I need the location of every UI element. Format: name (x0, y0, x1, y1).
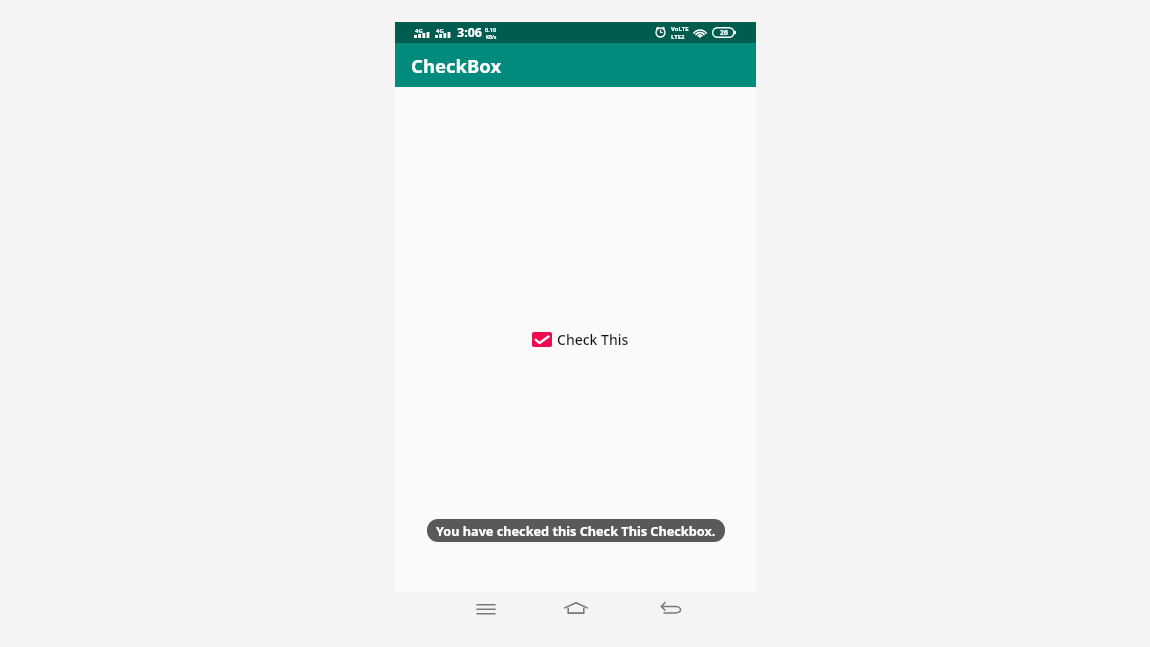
button[interactable]: Back (637, 592, 697, 632)
button[interactable]: Recent apps (457, 592, 517, 632)
staticText: 26 (720, 28, 729, 38)
button[interactable]: Check This (530, 328, 631, 351)
staticText: CheckBox (411, 53, 502, 78)
staticText: LTE2 (671, 33, 685, 41)
staticText: 3:06 (457, 24, 482, 41)
staticText: 4G (415, 27, 423, 35)
staticText: Check This (557, 330, 629, 349)
staticText: 0.10 (485, 26, 497, 34)
staticText: VoLTE (671, 25, 689, 33)
button[interactable]: Home (546, 592, 606, 632)
staticText: You have checked this Check This Checkbo… (436, 522, 716, 539)
staticText: 4G (436, 27, 444, 35)
staticText: KB/s (486, 34, 497, 40)
